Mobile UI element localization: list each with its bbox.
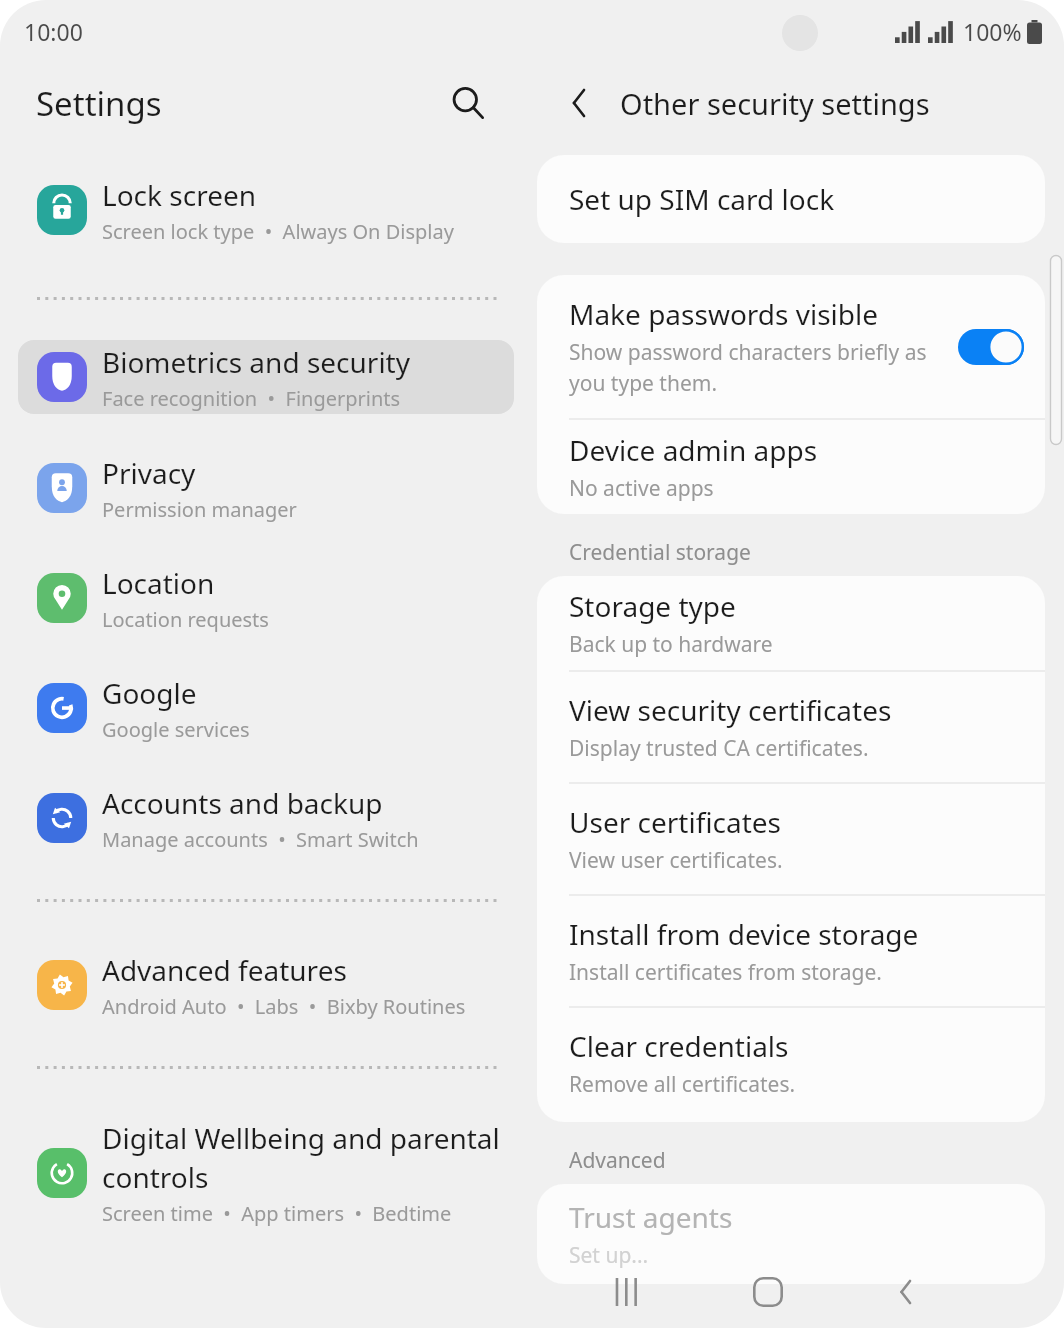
staticText: Screen lock type • Always On Display <box>102 218 454 245</box>
staticText: 10:00 <box>24 16 83 47</box>
staticText: Manage accounts • Smart Switch <box>102 826 419 853</box>
staticText: Advanced features <box>102 951 347 989</box>
staticText: you type them. <box>569 369 718 398</box>
staticText: Digital Wellbeing and parental <box>102 1119 500 1157</box>
staticText: Set up... <box>569 1241 649 1270</box>
staticText: Android Auto • Labs • Bixby Routines <box>102 993 466 1020</box>
staticText: Install from device storage <box>569 915 919 953</box>
button[interactable]: User certificates <box>537 784 1045 894</box>
staticText: Accounts and backup <box>102 784 383 822</box>
staticText: User certificates <box>569 803 781 841</box>
staticText: Credential storage <box>569 538 751 567</box>
button[interactable]: Home <box>726 1255 810 1328</box>
button[interactable]: Privacy <box>18 451 514 525</box>
staticText: Settings <box>36 81 162 126</box>
staticText: View user certificates. <box>569 846 783 875</box>
button[interactable]: Back <box>866 1255 950 1328</box>
staticText: Lock screen <box>102 176 257 214</box>
staticText: controls <box>102 1158 209 1196</box>
staticText: View security certificates <box>569 691 892 729</box>
button[interactable]: View security certificates <box>537 672 1045 782</box>
staticText: Advanced <box>569 1146 666 1175</box>
staticText: Privacy <box>102 454 196 492</box>
button[interactable]: Device admin apps <box>537 420 1045 514</box>
staticText: Location requests <box>102 606 269 633</box>
staticText: Device admin apps <box>569 431 818 469</box>
button[interactable]: Set up SIM card lock <box>537 155 1045 243</box>
staticText: Google services <box>102 716 250 743</box>
button[interactable]: Lock screen <box>18 173 514 247</box>
button[interactable]: Google <box>18 671 514 745</box>
button[interactable]: Install from device storage <box>537 896 1045 1006</box>
button[interactable]: Location <box>18 561 514 635</box>
staticText: Install certificates from storage. <box>569 958 882 987</box>
staticText: No active apps <box>569 474 714 503</box>
staticText: Google <box>102 674 197 712</box>
button[interactable]: Make passwords visible toggle <box>957 323 1025 371</box>
staticText: Make passwords visible <box>569 295 879 333</box>
button[interactable]: Search <box>440 75 496 131</box>
staticText: Screen time • App timers • Bedtime mode <box>102 1200 502 1227</box>
button[interactable]: Make passwords visible <box>537 275 1045 418</box>
button[interactable]: Clear credentials <box>537 1008 1045 1118</box>
button[interactable]: Storage type <box>537 576 1045 670</box>
button[interactable]: Biometrics and security <box>18 340 514 414</box>
staticText: Display trusted CA certificates. <box>569 734 869 763</box>
staticText: Location <box>102 564 215 602</box>
staticText: Biometrics and security <box>102 343 411 381</box>
staticText: Face recognition • Fingerprints <box>102 385 401 412</box>
staticText: Clear credentials <box>569 1027 789 1065</box>
staticText: Show password characters briefly as <box>569 338 927 367</box>
button[interactable]: Advanced features <box>18 948 514 1022</box>
button[interactable]: Recents <box>586 1255 670 1328</box>
staticText: Back up to hardware <box>569 630 773 659</box>
staticText: Storage type <box>569 587 736 625</box>
button[interactable]: Digital Wellbeing and parental <box>18 1114 514 1232</box>
staticText: Set up SIM card lock <box>569 180 835 218</box>
button[interactable]: Accounts and backup <box>18 781 514 855</box>
staticText: 100% <box>963 16 1022 47</box>
staticText: Remove all certificates. <box>569 1070 796 1099</box>
staticText: Permission manager <box>102 496 297 523</box>
staticText: Other security settings <box>620 84 930 123</box>
staticText: Trust agents <box>569 1198 733 1236</box>
button[interactable]: Back <box>554 75 610 131</box>
button[interactable]: Trust agents <box>537 1184 1045 1284</box>
